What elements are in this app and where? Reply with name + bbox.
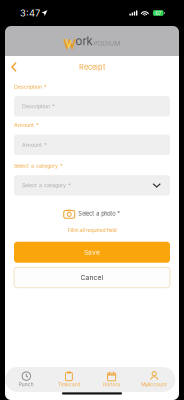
button[interactable]: Amount *	[14, 135, 170, 155]
staticText: Receipt	[79, 62, 105, 71]
staticText: 67	[155, 10, 161, 16]
staticText: Amount *	[14, 122, 39, 128]
staticText: Save	[84, 248, 100, 256]
staticText: Punch	[19, 382, 34, 387]
button[interactable]: Cancel	[14, 267, 170, 288]
button[interactable]: Select a category *	[14, 175, 170, 196]
button[interactable]: Select a photo *	[64, 209, 120, 218]
staticText: Amount *	[22, 142, 47, 148]
button[interactable]: History	[90, 367, 133, 392]
staticText: Select a photo *	[78, 210, 120, 217]
staticText: 3:47	[20, 7, 40, 19]
button[interactable]: Punch	[5, 367, 48, 392]
button[interactable]: Save	[14, 242, 170, 263]
button[interactable]: Back	[5, 58, 26, 76]
staticText: History	[103, 382, 121, 387]
staticText: Select a category *	[14, 162, 63, 169]
staticText: PODIUM	[93, 39, 120, 47]
staticText: Description *	[14, 83, 47, 90]
staticText: Select a category *	[22, 182, 71, 189]
staticText: Fill in all required field	[67, 227, 116, 233]
button[interactable]: Timecard	[48, 367, 90, 392]
staticText: ork	[75, 34, 92, 48]
button[interactable]: MyAccount	[133, 367, 175, 392]
staticText: Cancel	[80, 273, 103, 282]
button[interactable]: Description *	[14, 96, 170, 117]
staticText: Timecard	[58, 382, 80, 387]
staticText: MyAccount	[141, 382, 167, 387]
staticText: Description *	[22, 103, 55, 110]
